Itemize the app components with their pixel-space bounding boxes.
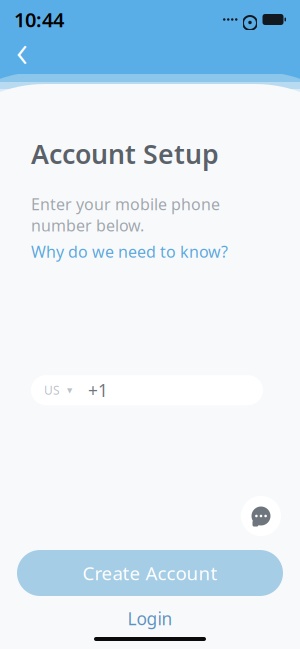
staticText: +1 <box>88 379 108 402</box>
button[interactable]: Why do we need to know? <box>31 236 228 262</box>
staticText: Account Setup <box>31 136 219 171</box>
button[interactable]: Chat support <box>239 494 283 538</box>
button[interactable]: Select country code <box>31 375 82 405</box>
staticText: Enter your mobile phone number below. <box>31 193 220 236</box>
staticText: ‹ <box>16 20 28 80</box>
staticText: Create Account <box>82 561 217 585</box>
staticText: ▾ <box>67 384 72 396</box>
staticText: 10:44 <box>14 6 64 33</box>
button[interactable]: Login <box>109 601 190 636</box>
button[interactable]: Back <box>0 30 44 70</box>
staticText: Login <box>127 607 172 630</box>
button[interactable]: Create Account <box>17 550 283 596</box>
staticText: Why do we need to know? <box>31 241 228 262</box>
staticText: US <box>44 382 60 398</box>
